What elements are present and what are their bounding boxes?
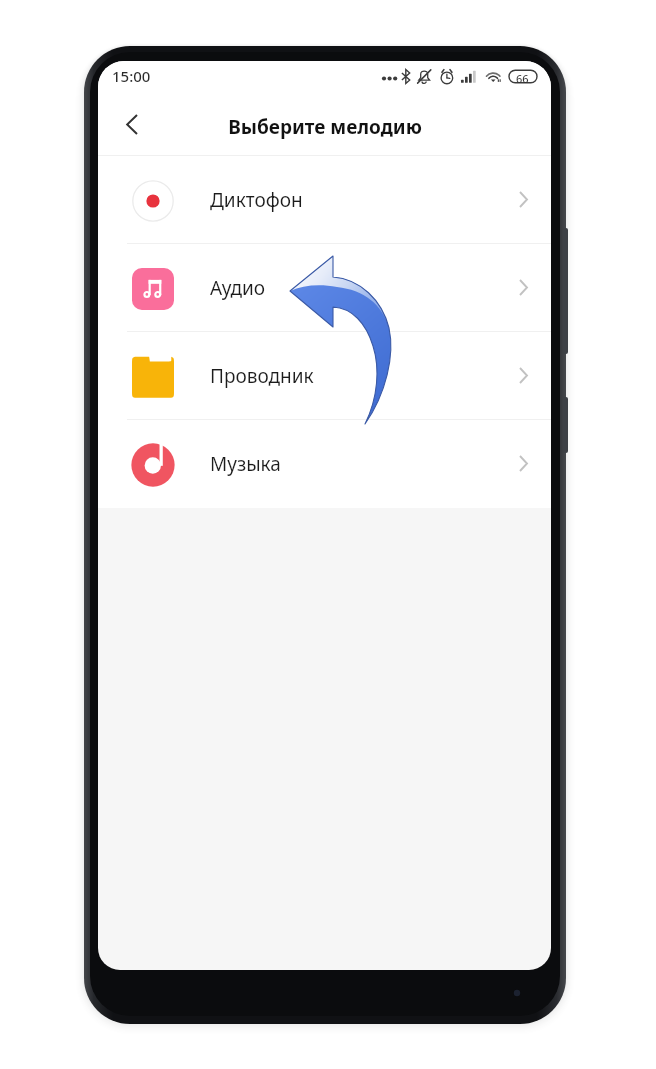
staticText: Выберите мелодию — [228, 114, 422, 140]
staticText: Диктофон — [210, 187, 303, 213]
staticText: 15:00 — [112, 66, 151, 86]
staticText: Музыка — [210, 451, 281, 477]
button[interactable]: Back — [108, 102, 156, 150]
button[interactable]: Проводник — [98, 332, 551, 419]
staticText: Аудио — [210, 275, 266, 301]
staticText: 66 — [516, 71, 529, 86]
staticText: Проводник — [210, 363, 314, 389]
button[interactable]: Диктофон — [98, 156, 551, 243]
button[interactable]: Музыка — [98, 420, 551, 507]
button[interactable]: Аудио — [98, 244, 551, 331]
